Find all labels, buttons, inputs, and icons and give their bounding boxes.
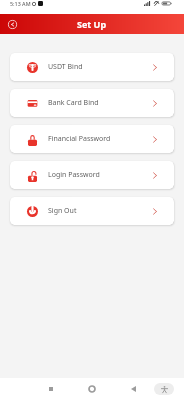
staticText: Bank Card Bind <box>48 98 99 108</box>
button[interactable]: Financial Password <box>10 125 174 153</box>
staticText: Login Password <box>48 170 100 180</box>
staticText: Financial Password <box>48 134 111 144</box>
button[interactable]: Accessibility <box>154 383 174 395</box>
staticText: Set Up <box>77 18 107 30</box>
button[interactable]: Sign Out <box>10 197 174 225</box>
button[interactable]: Back <box>122 378 144 400</box>
staticText: 5:13 AM <box>10 0 31 7</box>
button[interactable]: Bank Card Bind <box>10 89 174 117</box>
staticText: USDT Bind <box>48 62 83 72</box>
button[interactable]: Home <box>81 378 103 400</box>
button[interactable]: Back <box>4 16 20 32</box>
button[interactable]: Recents <box>40 378 62 400</box>
button[interactable]: USDT Bind <box>10 53 174 81</box>
button[interactable]: Login Password <box>10 161 174 189</box>
staticText: Sign Out <box>48 206 77 216</box>
